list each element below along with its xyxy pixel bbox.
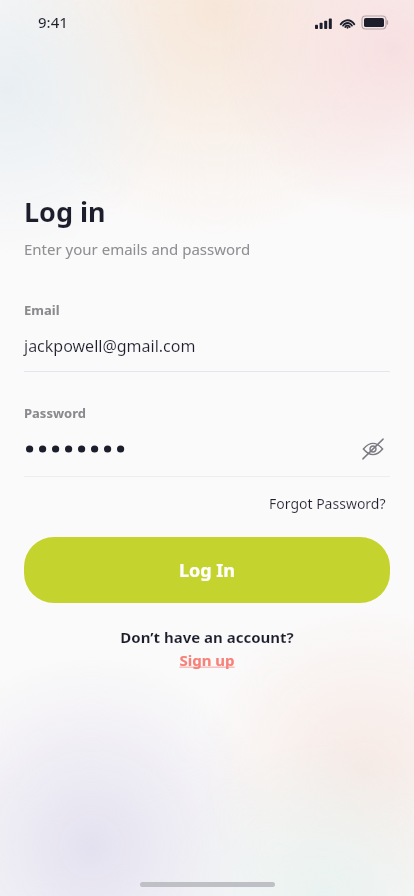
button[interactable]: Forgot Password? — [265, 490, 390, 517]
staticText: Don’t have an account? — [120, 627, 294, 647]
staticText: Log In — [179, 558, 236, 583]
staticText: Forgot Password? — [269, 494, 386, 513]
button[interactable]: Sign up — [179, 650, 235, 670]
staticText: 9:41 — [38, 12, 68, 32]
staticText: Log in — [24, 193, 106, 230]
staticText: Sign up — [179, 650, 235, 670]
staticText: Enter your emails and password — [24, 239, 251, 259]
button[interactable] — [24, 436, 356, 462]
button[interactable]: Show password — [356, 436, 390, 462]
staticText: jackpowell@gmail.com — [24, 335, 196, 357]
button[interactable]: jackpowell@gmail.com — [24, 335, 390, 357]
button[interactable]: Log In — [24, 537, 390, 603]
staticText: Password — [24, 404, 86, 422]
staticText: Email — [24, 301, 60, 319]
